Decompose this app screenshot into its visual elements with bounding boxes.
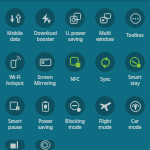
- button[interactable]: NFC: [60, 52, 90, 96]
- staticText: Sync: [100, 76, 111, 83]
- staticText: Car mode: [128, 118, 142, 130]
- staticText: NFC: [70, 76, 80, 83]
- button[interactable]: Car mode: [120, 96, 150, 140]
- staticText: Toolbox: [126, 32, 144, 39]
- button[interactable]: Sync: [90, 52, 120, 96]
- staticText: Blocking mode: [65, 118, 85, 130]
- button[interactable]: Blocking mode: [60, 96, 90, 140]
- staticText: Mobile data: [7, 30, 23, 42]
- button[interactable]: Multi window: [90, 8, 120, 52]
- staticText: Wi-Fi hotspot: [6, 74, 24, 86]
- button[interactable]: Quick connect: [30, 140, 60, 150]
- staticText: Multi window: [96, 30, 114, 42]
- button[interactable]: Download booster: [30, 8, 60, 52]
- button[interactable]: Ultra power saving: [60, 8, 90, 52]
- staticText: Screen Mirroring: [34, 74, 56, 86]
- button[interactable]: Flight mode: [90, 96, 120, 140]
- button[interactable]: Private mode: [0, 140, 30, 150]
- button[interactable]: Smart stay: [120, 52, 150, 96]
- button[interactable]: Mobile data: [0, 8, 30, 52]
- staticText: Download booster: [34, 30, 57, 42]
- button[interactable]: Power saving: [30, 96, 60, 140]
- staticText: Smart pause: [8, 118, 22, 130]
- staticText: U. power saving: [65, 30, 86, 42]
- button[interactable]: Screen Mirroring: [30, 52, 60, 96]
- button[interactable]: Toolbox: [120, 8, 150, 52]
- staticText: Flight mode: [98, 118, 112, 130]
- button[interactable]: Wi-Fi hotspot: [0, 52, 30, 96]
- button[interactable]: Smart pause: [0, 96, 30, 140]
- staticText: Smart stay: [128, 74, 142, 86]
- staticText: Power saving: [38, 118, 53, 130]
